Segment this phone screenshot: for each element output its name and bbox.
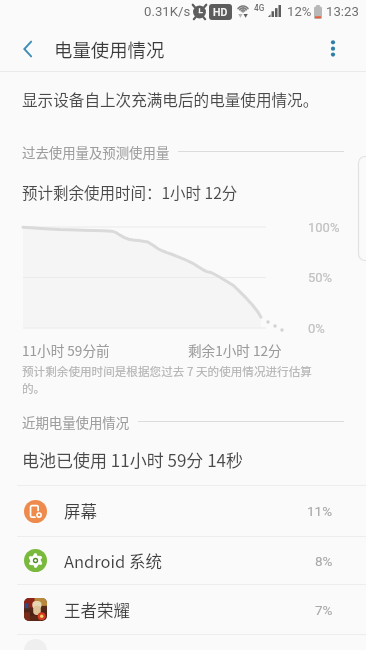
staticText: 100% bbox=[308, 220, 340, 235]
staticText: 7% bbox=[315, 602, 333, 618]
staticText: 12% bbox=[287, 4, 312, 19]
button[interactable]: Android 系统 bbox=[0, 537, 366, 584]
button[interactable]: More options bbox=[311, 26, 355, 71]
staticText: 电量使用情况 bbox=[54, 36, 165, 63]
button[interactable]: 王者荣耀 bbox=[0, 585, 366, 634]
staticText: 50% bbox=[308, 270, 333, 285]
staticText: 预计剩余使用时间：1小时 12分 bbox=[22, 181, 238, 203]
button[interactable]: Back bbox=[0, 26, 46, 71]
staticText: Android 系统 bbox=[64, 549, 163, 573]
staticText: 11小时 59分前 bbox=[22, 340, 110, 360]
staticText: 0.31K/s bbox=[144, 4, 191, 19]
staticText: 王者荣耀 bbox=[64, 598, 130, 622]
staticText: 过去使用量及预测使用量 bbox=[22, 142, 170, 161]
staticText: 显示设备自上次充满电后的电量使用情况。 bbox=[22, 88, 319, 111]
staticText: 11% bbox=[307, 503, 333, 519]
staticText: 电池已使用 11小时 59分 14秒 bbox=[22, 447, 244, 472]
staticText: 13:23 bbox=[326, 4, 359, 19]
staticText: HD bbox=[213, 6, 228, 18]
staticText: 4G bbox=[254, 3, 265, 13]
staticText: 8% bbox=[315, 553, 333, 569]
staticText: 0% bbox=[308, 321, 325, 336]
staticText: 预计剩余使用时间是根据您过去 7 天的使用情况进行估算的。 bbox=[22, 363, 334, 396]
staticText: 剩余1小时 12分 bbox=[188, 340, 282, 360]
staticText: 屏幕 bbox=[64, 499, 97, 523]
button[interactable]: 屏幕 bbox=[0, 486, 366, 536]
staticText: 近期电量使用情况 bbox=[22, 412, 130, 431]
